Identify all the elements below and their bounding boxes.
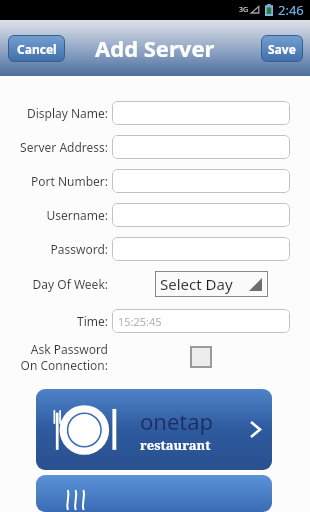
staticText: Day Of Week:: [0, 276, 108, 292]
staticText: Select Day: [160, 274, 233, 294]
staticText: Cancel: [17, 41, 57, 57]
button[interactable]: Ask password on connection: [190, 346, 212, 368]
button[interactable]: Cancel: [8, 35, 65, 62]
staticText: 2:46: [278, 1, 304, 19]
staticText: Ask Password On Connection:: [0, 341, 108, 373]
staticText: Save: [268, 41, 296, 57]
staticText: 3G: [239, 5, 249, 15]
button[interactable]: [112, 203, 290, 227]
button[interactable]: [112, 169, 290, 193]
staticText: Server Address:: [0, 139, 108, 155]
button[interactable]: Save: [261, 35, 303, 62]
staticText: Port Number:: [0, 173, 108, 189]
button[interactable]: [112, 135, 290, 159]
staticText: 15:25:45: [118, 314, 162, 329]
staticText: onetap: [140, 406, 214, 436]
button[interactable]: 15:25:45: [112, 309, 290, 333]
button[interactable]: Second advertisement banner: [36, 475, 272, 512]
staticText: Add Server: [95, 33, 215, 63]
staticText: Username:: [0, 207, 108, 223]
staticText: Display Name:: [0, 105, 108, 121]
button[interactable]: [112, 237, 290, 261]
staticText: restaurant: [140, 436, 211, 454]
staticText: Password:: [0, 241, 108, 257]
button[interactable]: [112, 101, 290, 125]
button[interactable]: Select Day: [155, 271, 268, 297]
button[interactable]: onetap restaurant advertisement: [36, 389, 272, 470]
staticText: Time:: [0, 313, 108, 329]
